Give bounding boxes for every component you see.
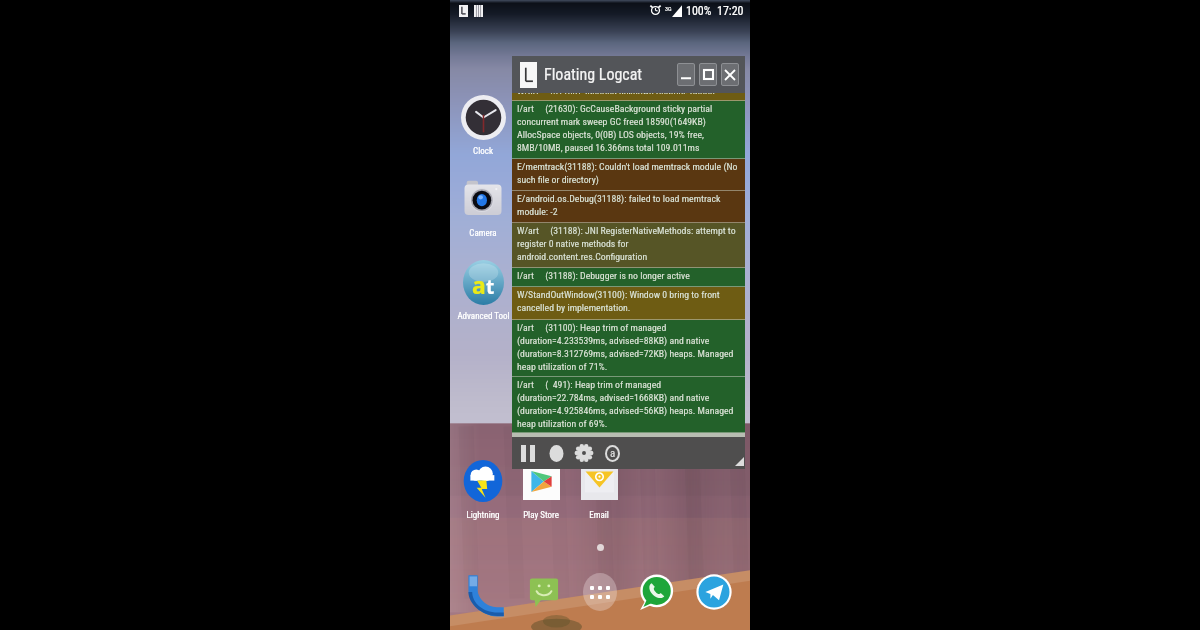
button[interactable]: Play Store: [512, 452, 570, 521]
button[interactable]: Maximise: [699, 63, 717, 86]
button[interactable]: Clear log: [542, 437, 570, 469]
button[interactable]: About: [598, 437, 626, 469]
staticText: Floating Logcat: [544, 65, 643, 84]
button[interactable]: Close: [721, 63, 739, 86]
button[interactable]: I/art (21630): GcCauseBackground sticky …: [512, 101, 745, 159]
button[interactable]: Messages: [524, 572, 564, 612]
button[interactable]: W/art (31188): Ignoring unknown ringtone…: [512, 93, 745, 101]
staticText: Advanced Tool: [457, 311, 510, 322]
button[interactable]: Email: [570, 452, 628, 521]
staticText: 3G: [665, 5, 672, 12]
staticText: W/art (31188): Ignoring unknown ringtone…: [517, 93, 742, 94]
staticText: 100%: [686, 4, 712, 18]
button[interactable]: E/memtrack(31188): Couldn't load memtrac…: [512, 159, 745, 191]
button[interactable]: Home screen page 1: [591, 538, 609, 556]
staticText: 17:20: [717, 4, 744, 18]
staticText: Email: [589, 510, 609, 521]
button[interactable]: Resize window: [726, 437, 744, 469]
button[interactable]: a: [454, 253, 512, 322]
button[interactable]: W/StandOutWindow(31100): Window 0 bring …: [512, 287, 745, 320]
staticText: I/art (21630): GcCauseBackground sticky …: [517, 103, 713, 154]
button[interactable]: Lightning: [454, 452, 512, 521]
button[interactable]: Phone: [464, 572, 504, 612]
button[interactable]: Minimise: [677, 63, 695, 86]
button[interactable]: I/art ( 491): Heap trim of managed (dura…: [512, 377, 745, 433]
button[interactable]: Apps: [580, 572, 620, 612]
staticText: Lightning: [466, 510, 500, 521]
button[interactable]: Clock: [454, 88, 512, 157]
staticText: Camera: [469, 228, 497, 239]
staticText: Play Store: [523, 510, 559, 521]
button[interactable]: W/art (31188): JNI RegisterNativeMethods…: [512, 223, 745, 268]
button[interactable]: Camera: [454, 170, 512, 239]
staticText: I/art (31100): Heap trim of managed (dur…: [517, 322, 734, 373]
button[interactable]: Pause: [514, 437, 542, 469]
staticText: E/memtrack(31188): Couldn't load memtrac…: [517, 161, 738, 186]
staticText: E/android.os.Debug(31188): failed to loa…: [517, 193, 721, 218]
staticText: I/art ( 491): Heap trim of managed (dura…: [517, 379, 734, 430]
button[interactable]: I/art (31188): Debugger is no longer act…: [512, 268, 745, 287]
staticText: W/art (31188): JNI RegisterNativeMethods…: [517, 225, 736, 263]
staticText: a: [472, 269, 486, 300]
staticText: W/StandOutWindow(31100): Window 0 bring …: [517, 289, 720, 314]
staticText: t: [486, 274, 495, 300]
button[interactable]: Telegram: [694, 572, 734, 612]
button[interactable]: I/art (31100): Heap trim of managed (dur…: [512, 320, 745, 377]
button[interactable]: WhatsApp: [636, 572, 676, 612]
button[interactable]: Settings: [570, 437, 598, 469]
staticText: Clock: [473, 146, 493, 157]
staticText: I/art (31188): Debugger is no longer act…: [517, 270, 690, 281]
button[interactable]: E/android.os.Debug(31188): failed to loa…: [512, 191, 745, 223]
staticText: a: [610, 447, 616, 460]
